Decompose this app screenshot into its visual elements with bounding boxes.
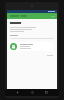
button[interactable]: App icon [10, 42, 54, 51]
button[interactable]: Home [30, 90, 35, 95]
other: App icon [10, 43, 17, 50]
button[interactable]: Recent apps [44, 90, 49, 95]
button[interactable] [7, 13, 57, 19]
button[interactable] [46, 54, 54, 57]
button[interactable]: Back [15, 90, 20, 95]
